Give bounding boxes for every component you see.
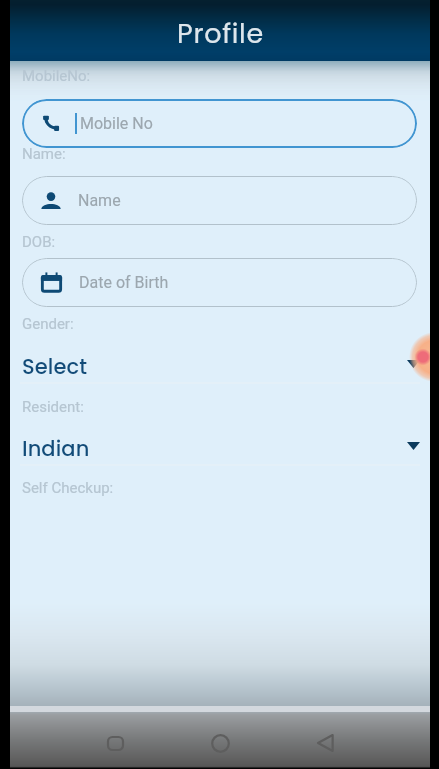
button[interactable]: Name <box>22 176 417 225</box>
staticText: Indian <box>22 434 90 463</box>
staticText: Name: <box>22 145 66 163</box>
staticText: Gender: <box>22 315 74 333</box>
button[interactable]: Indian <box>20 426 420 470</box>
button[interactable]: Home <box>196 719 244 767</box>
button[interactable]: Date of Birth <box>22 258 417 307</box>
staticText: Resident: <box>22 398 84 416</box>
button[interactable]: Mobile No <box>22 99 417 148</box>
staticText: Mobile No <box>80 114 153 133</box>
button[interactable]: Select <box>20 344 420 388</box>
button[interactable]: Recents <box>91 719 139 767</box>
staticText: Name <box>78 191 121 210</box>
staticText: Profile <box>177 15 264 53</box>
staticText: Self Checkup: <box>22 479 114 497</box>
staticText: DOB: <box>22 233 56 251</box>
staticText: Select <box>22 352 88 381</box>
button[interactable]: Back <box>301 719 349 767</box>
staticText: Date of Birth <box>79 273 169 292</box>
staticText: MobileNo: <box>22 67 91 85</box>
